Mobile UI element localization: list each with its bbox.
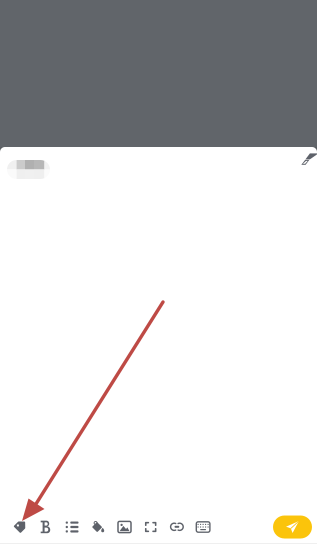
button[interactable]: Scan document xyxy=(138,511,164,543)
button[interactable]: Insert link xyxy=(164,511,190,543)
button[interactable]: Compose xyxy=(301,153,317,166)
button[interactable]: Insert photo xyxy=(111,511,138,543)
button[interactable]: Keyboard xyxy=(190,511,216,543)
button[interactable]: Bold xyxy=(33,511,59,543)
button[interactable]: Bulleted list xyxy=(59,511,85,543)
button[interactable]: Highlight colour xyxy=(85,511,111,543)
button[interactable]: Send xyxy=(273,515,312,538)
button[interactable]: Tag xyxy=(7,511,33,543)
